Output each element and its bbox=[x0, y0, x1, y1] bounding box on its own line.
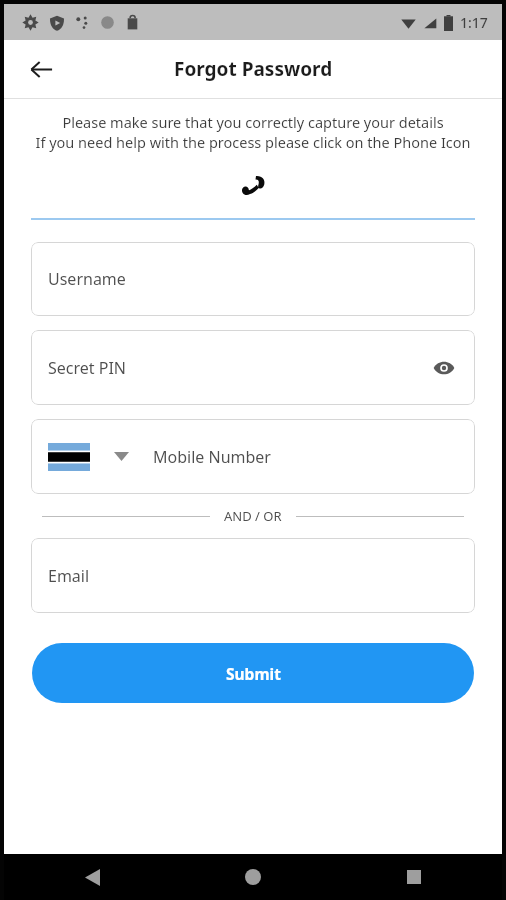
button[interactable]: Username bbox=[31, 242, 475, 316]
button[interactable]: Recents bbox=[392, 855, 436, 899]
staticText: Please make sure that you correctly capt… bbox=[30, 112, 476, 132]
staticText: Secret PIN bbox=[48, 357, 127, 379]
staticText: 1:17 bbox=[460, 13, 488, 32]
button[interactable]: Secret PIN bbox=[31, 330, 475, 405]
button[interactable]: Show PIN bbox=[425, 349, 463, 387]
staticText: Submit bbox=[226, 663, 281, 684]
staticText: If you need help with the process please… bbox=[24, 132, 482, 152]
staticText: Forgot Password bbox=[174, 56, 333, 82]
button[interactable]: Mobile Number bbox=[31, 419, 475, 494]
button[interactable]: Back bbox=[18, 46, 64, 92]
button[interactable]: Back bbox=[70, 855, 114, 899]
staticText: Mobile Number bbox=[153, 446, 271, 468]
button[interactable]: Call support bbox=[231, 164, 275, 208]
button[interactable]: Submit bbox=[32, 643, 474, 703]
staticText: Email bbox=[48, 565, 90, 587]
button[interactable]: Email bbox=[31, 538, 475, 613]
staticText: AND / OR bbox=[224, 507, 282, 525]
button[interactable]: Home bbox=[231, 855, 275, 899]
staticText: Username bbox=[48, 268, 126, 290]
